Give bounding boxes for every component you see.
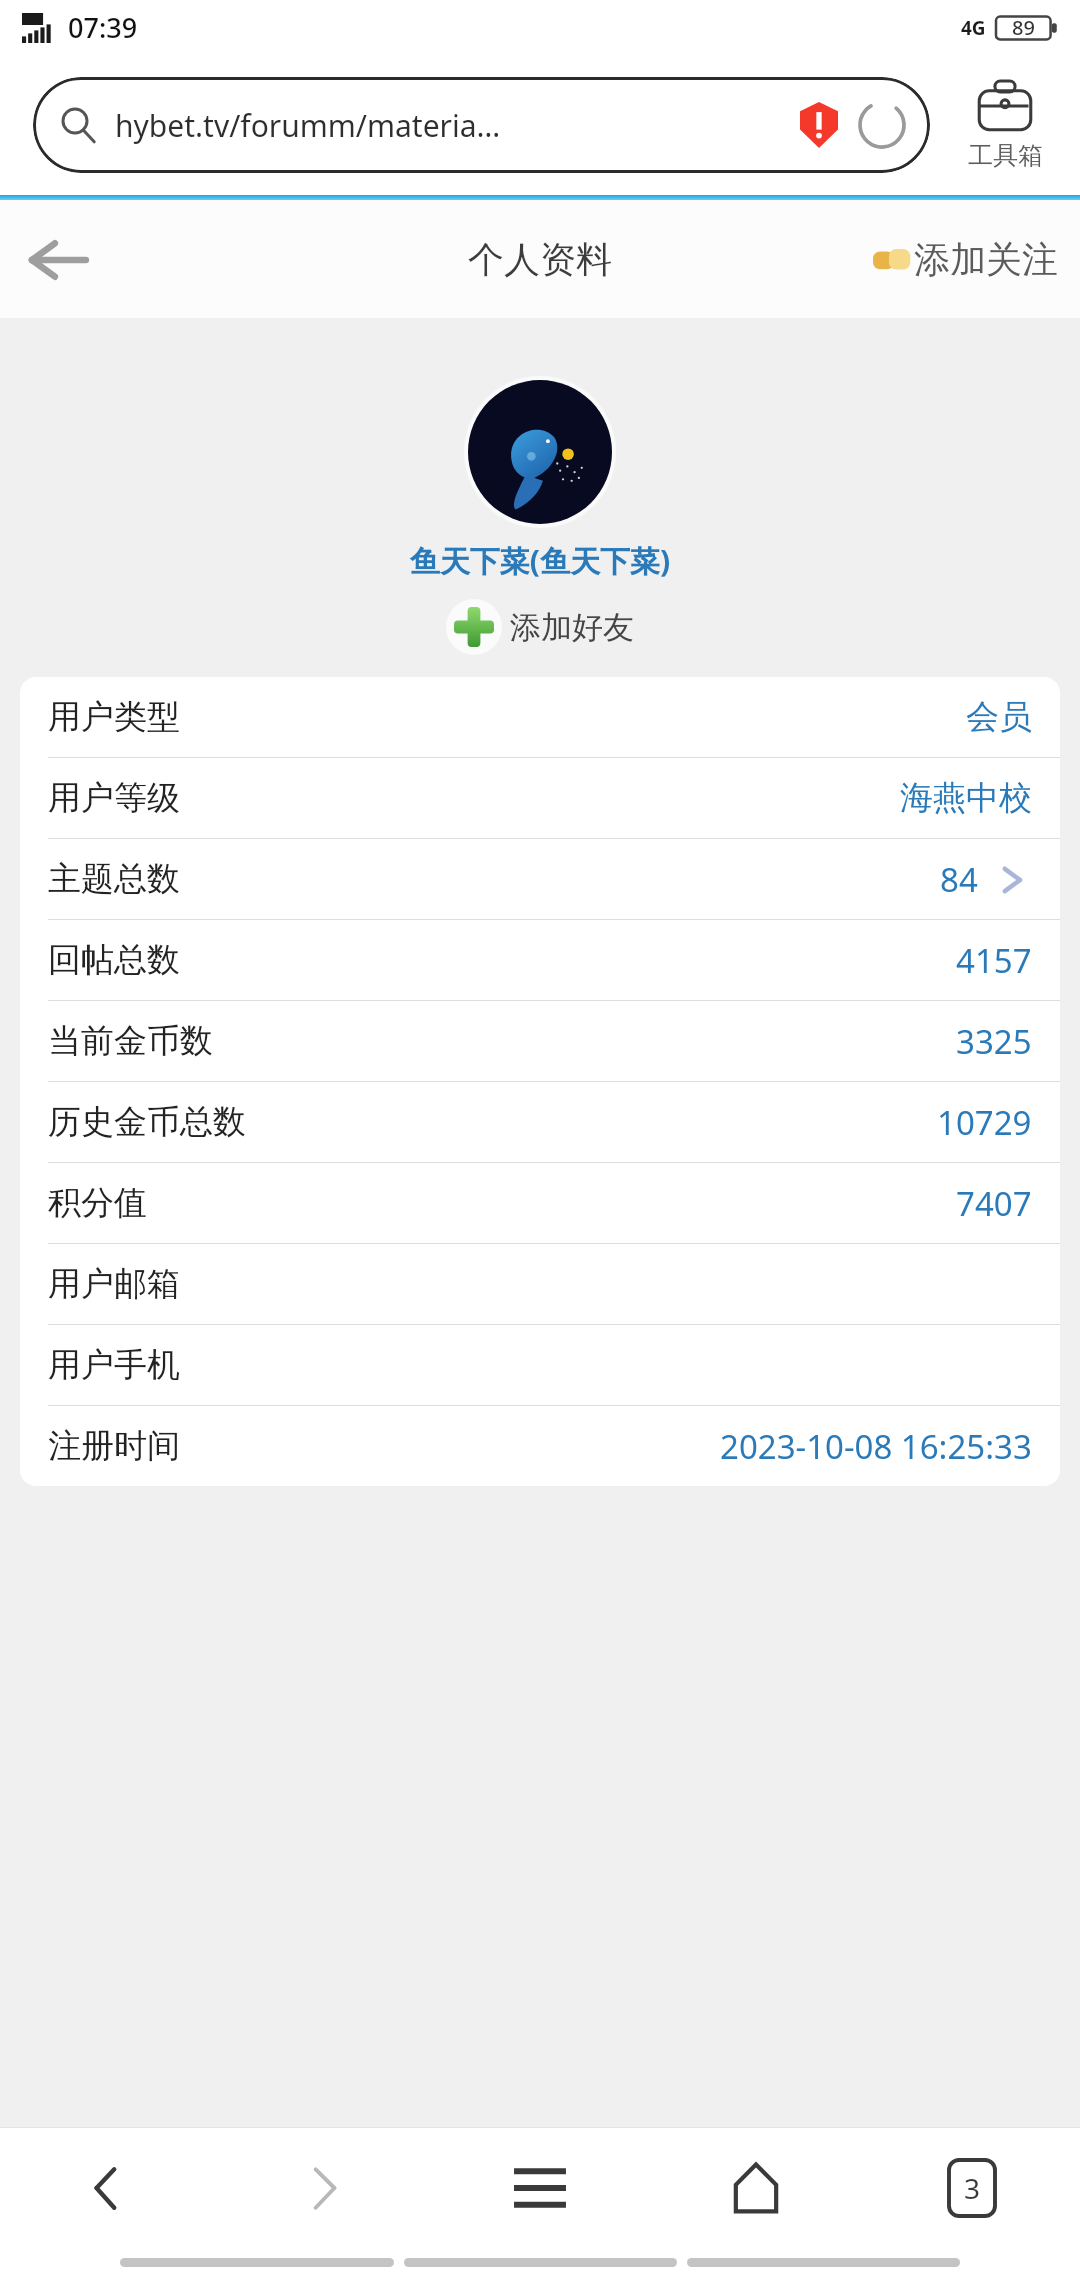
button[interactable]: 添加关注 <box>873 237 1058 282</box>
staticText: 当前金币数 <box>48 1020 213 1062</box>
button[interactable]: 工具箱 <box>930 55 1080 195</box>
staticText: 鱼天下菜(鱼天下菜) <box>0 540 1080 581</box>
button[interactable]: 历史金币总数 <box>20 1082 1060 1162</box>
button[interactable]: 前进 <box>216 2128 432 2248</box>
staticText: 注册时间 <box>48 1425 180 1467</box>
staticText: 2023-10-08 16:25:33 <box>720 1424 1032 1469</box>
button[interactable]: 用户等级 <box>20 758 1060 838</box>
button[interactable]: 当前金币数 <box>20 1001 1060 1081</box>
button[interactable]: hybet.tv/forumm/materia… <box>33 77 930 173</box>
staticText: 84 <box>940 857 978 902</box>
other: Reload <box>860 103 904 147</box>
staticText: 7407 <box>956 1181 1032 1226</box>
button[interactable]: 返回 <box>10 212 105 307</box>
staticText: 3325 <box>956 1019 1032 1064</box>
staticText: 回帖总数 <box>48 939 180 981</box>
button[interactable]: 菜单 <box>432 2128 648 2248</box>
staticText: 添加关注 <box>914 237 1058 282</box>
staticText: 添加好友 <box>510 608 634 647</box>
staticText: 3 <box>964 2169 981 2207</box>
button[interactable]: 积分值 <box>20 1163 1060 1243</box>
staticText: 积分值 <box>48 1182 147 1224</box>
staticText: 4G <box>961 15 986 41</box>
staticText: 用户类型 <box>48 696 180 738</box>
staticText: 历史金币总数 <box>48 1101 246 1143</box>
staticText: 用户邮箱 <box>48 1263 180 1305</box>
button[interactable]: 注册时间 <box>20 1406 1060 1486</box>
button[interactable]: 用户手机 <box>20 1325 1060 1405</box>
staticText: 用户手机 <box>48 1344 180 1386</box>
button[interactable]: 主页 <box>648 2128 864 2248</box>
button[interactable]: 头像 <box>468 380 612 524</box>
staticText: 工具箱 <box>968 140 1043 171</box>
staticText: 4157 <box>956 938 1032 983</box>
staticText: 主题总数 <box>48 858 180 900</box>
staticText: 海燕中校 <box>900 777 1032 819</box>
button[interactable]: 回帖总数 <box>20 920 1060 1000</box>
staticText: hybet.tv/forumm/materia… <box>115 105 800 146</box>
staticText: 10729 <box>937 1100 1032 1145</box>
button[interactable]: 添加好友 <box>446 599 634 655</box>
staticText: 07:39 <box>68 9 138 46</box>
button[interactable]: 标签页 <box>864 2128 1080 2248</box>
staticText: 89 <box>1012 14 1035 41</box>
staticText: 用户等级 <box>48 777 180 819</box>
staticText: 个人资料 <box>468 237 612 282</box>
button[interactable]: 后退 <box>0 2128 216 2248</box>
staticText: 会员 <box>966 696 1032 738</box>
button[interactable]: 主题总数 <box>20 839 1060 919</box>
button[interactable]: 用户邮箱 <box>20 1244 1060 1324</box>
button[interactable]: 用户类型 <box>20 677 1060 757</box>
